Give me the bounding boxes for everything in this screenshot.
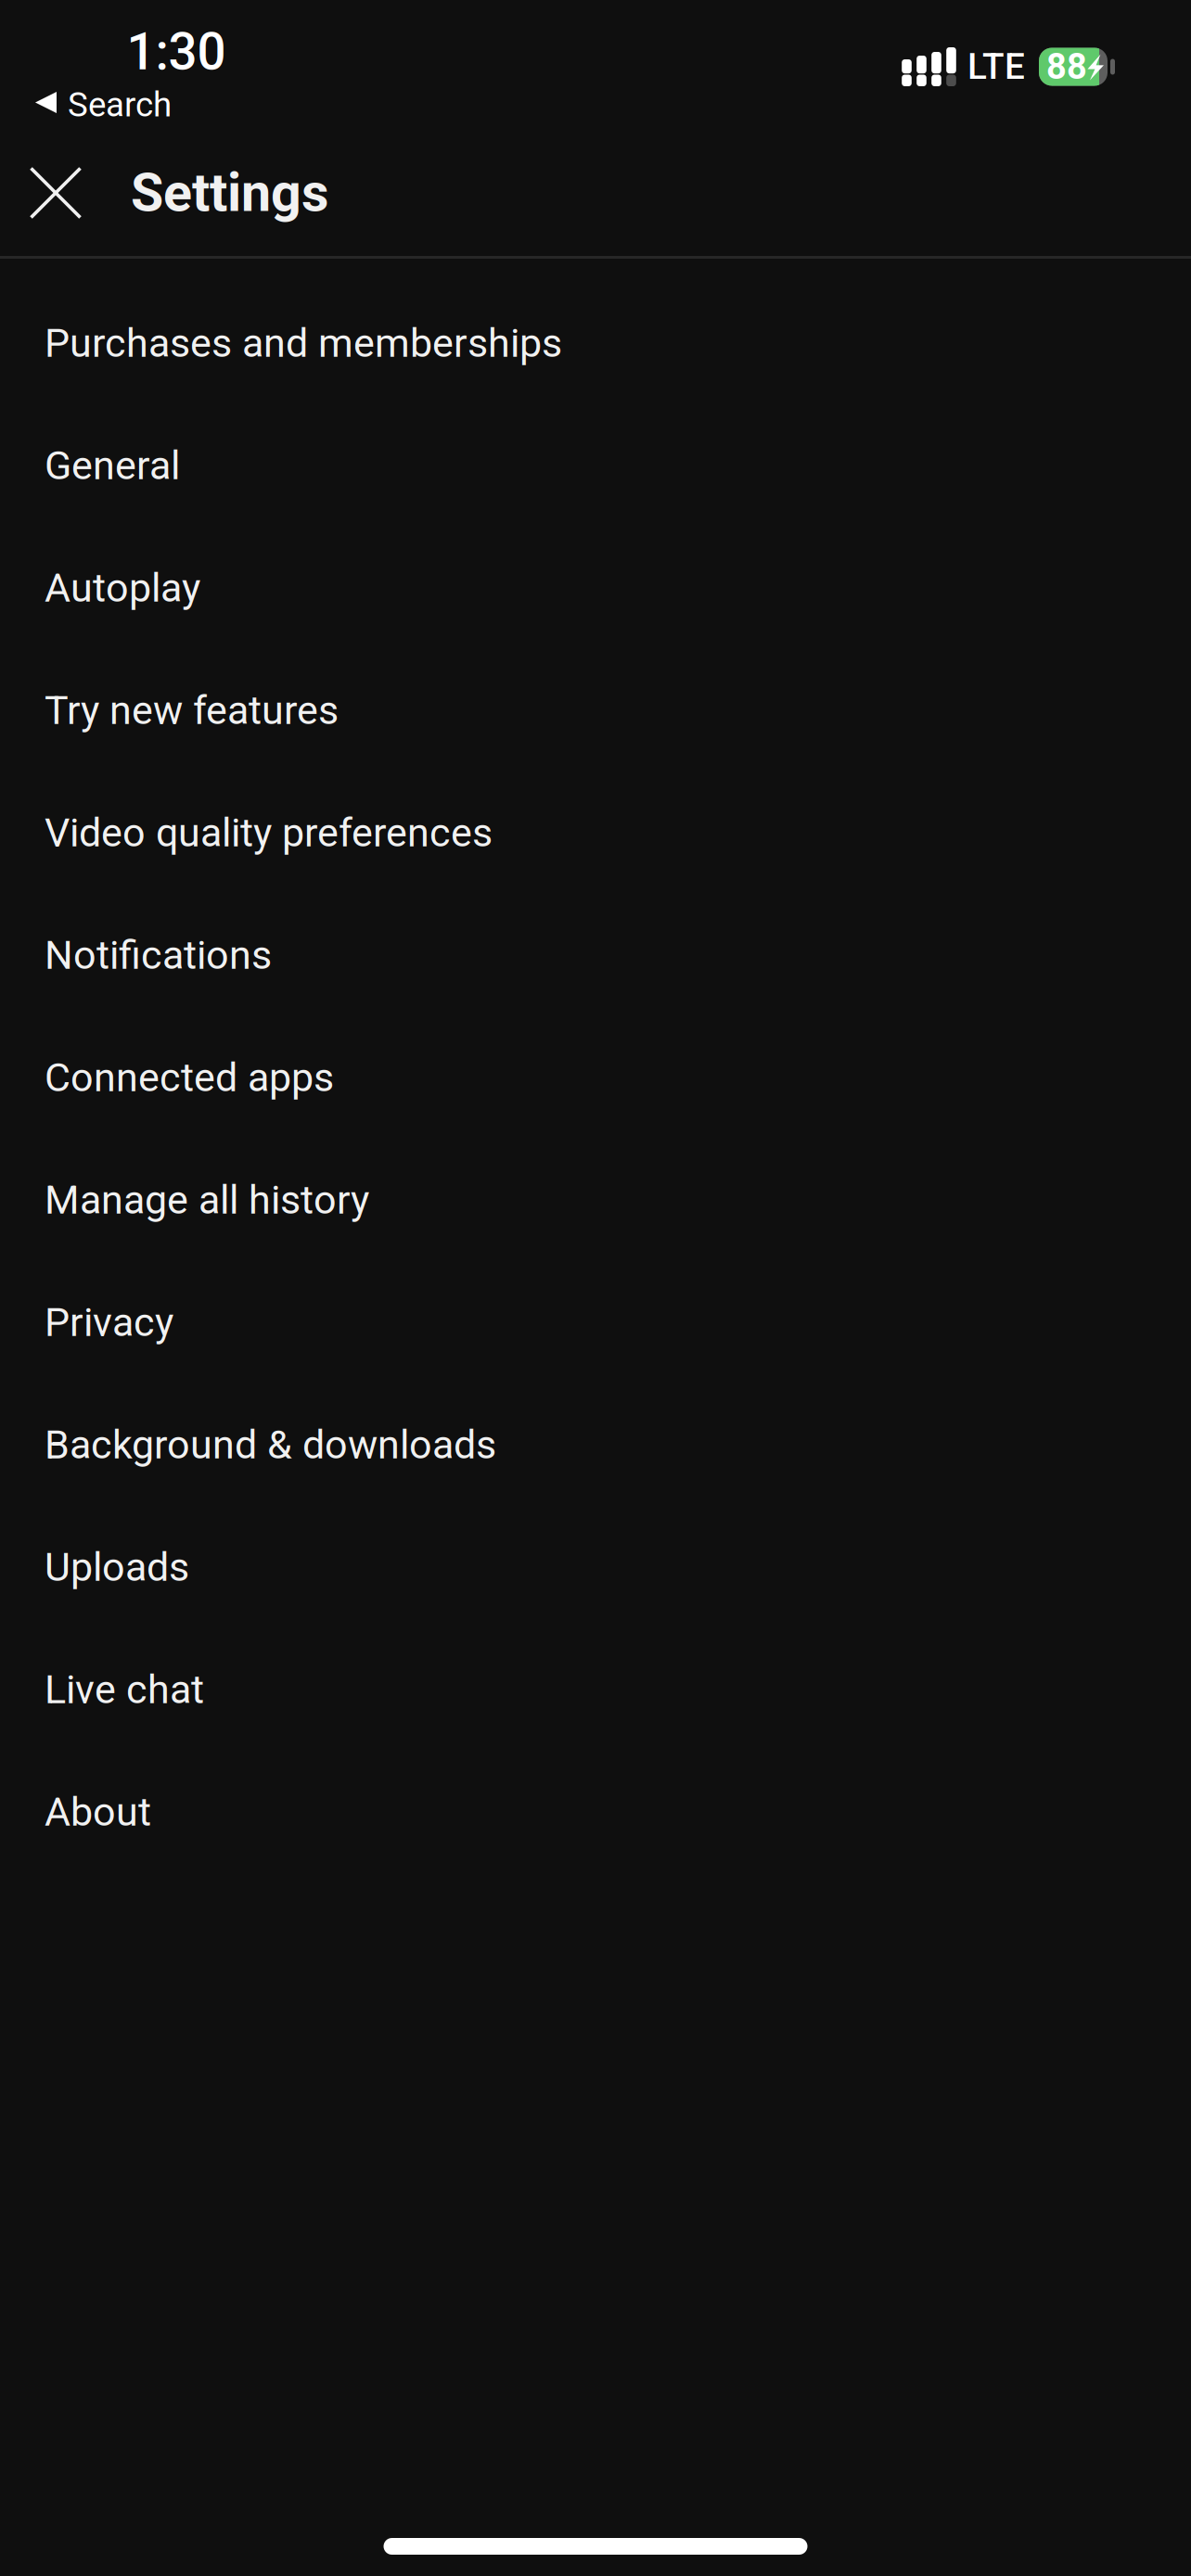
- button[interactable]: Video quality preferences: [0, 772, 1191, 894]
- button[interactable]: Connected apps: [0, 1016, 1191, 1139]
- staticText: Background & downloads: [45, 1421, 496, 1468]
- button[interactable]: Privacy: [0, 1261, 1191, 1384]
- button[interactable]: About: [0, 1751, 1191, 1873]
- staticText: Notifications: [45, 932, 272, 978]
- staticText: Purchases and memberships: [45, 320, 562, 366]
- staticText: General: [45, 442, 180, 489]
- staticText: Settings: [131, 162, 328, 224]
- button[interactable]: Purchases and memberships: [0, 282, 1191, 404]
- staticText: LTE: [967, 46, 1025, 88]
- staticText: Privacy: [45, 1299, 173, 1346]
- staticText: Connected apps: [45, 1054, 334, 1101]
- button[interactable]: Close: [0, 130, 111, 256]
- staticText: 1:30: [127, 22, 226, 82]
- button[interactable]: Notifications: [0, 894, 1191, 1016]
- staticText: Live chat: [45, 1666, 204, 1713]
- staticText: Video quality preferences: [45, 809, 493, 856]
- button[interactable]: General: [0, 404, 1191, 527]
- staticText: 88: [1046, 46, 1087, 87]
- staticText: Try new features: [45, 687, 339, 734]
- button[interactable]: Settings: [111, 130, 354, 256]
- button[interactable]: Background & downloads: [0, 1384, 1191, 1506]
- button[interactable]: Manage all history: [0, 1139, 1191, 1261]
- staticText: Autoplay: [45, 565, 200, 611]
- staticText: Search: [68, 85, 172, 125]
- staticText: Manage all history: [45, 1177, 369, 1223]
- staticText: Uploads: [45, 1544, 189, 1590]
- button[interactable]: Try new features: [0, 649, 1191, 772]
- button[interactable]: Uploads: [0, 1506, 1191, 1628]
- staticText: About: [45, 1789, 151, 1835]
- button[interactable]: Search: [0, 87, 1191, 130]
- button[interactable]: Live chat: [0, 1628, 1191, 1751]
- button[interactable]: Autoplay: [0, 527, 1191, 649]
